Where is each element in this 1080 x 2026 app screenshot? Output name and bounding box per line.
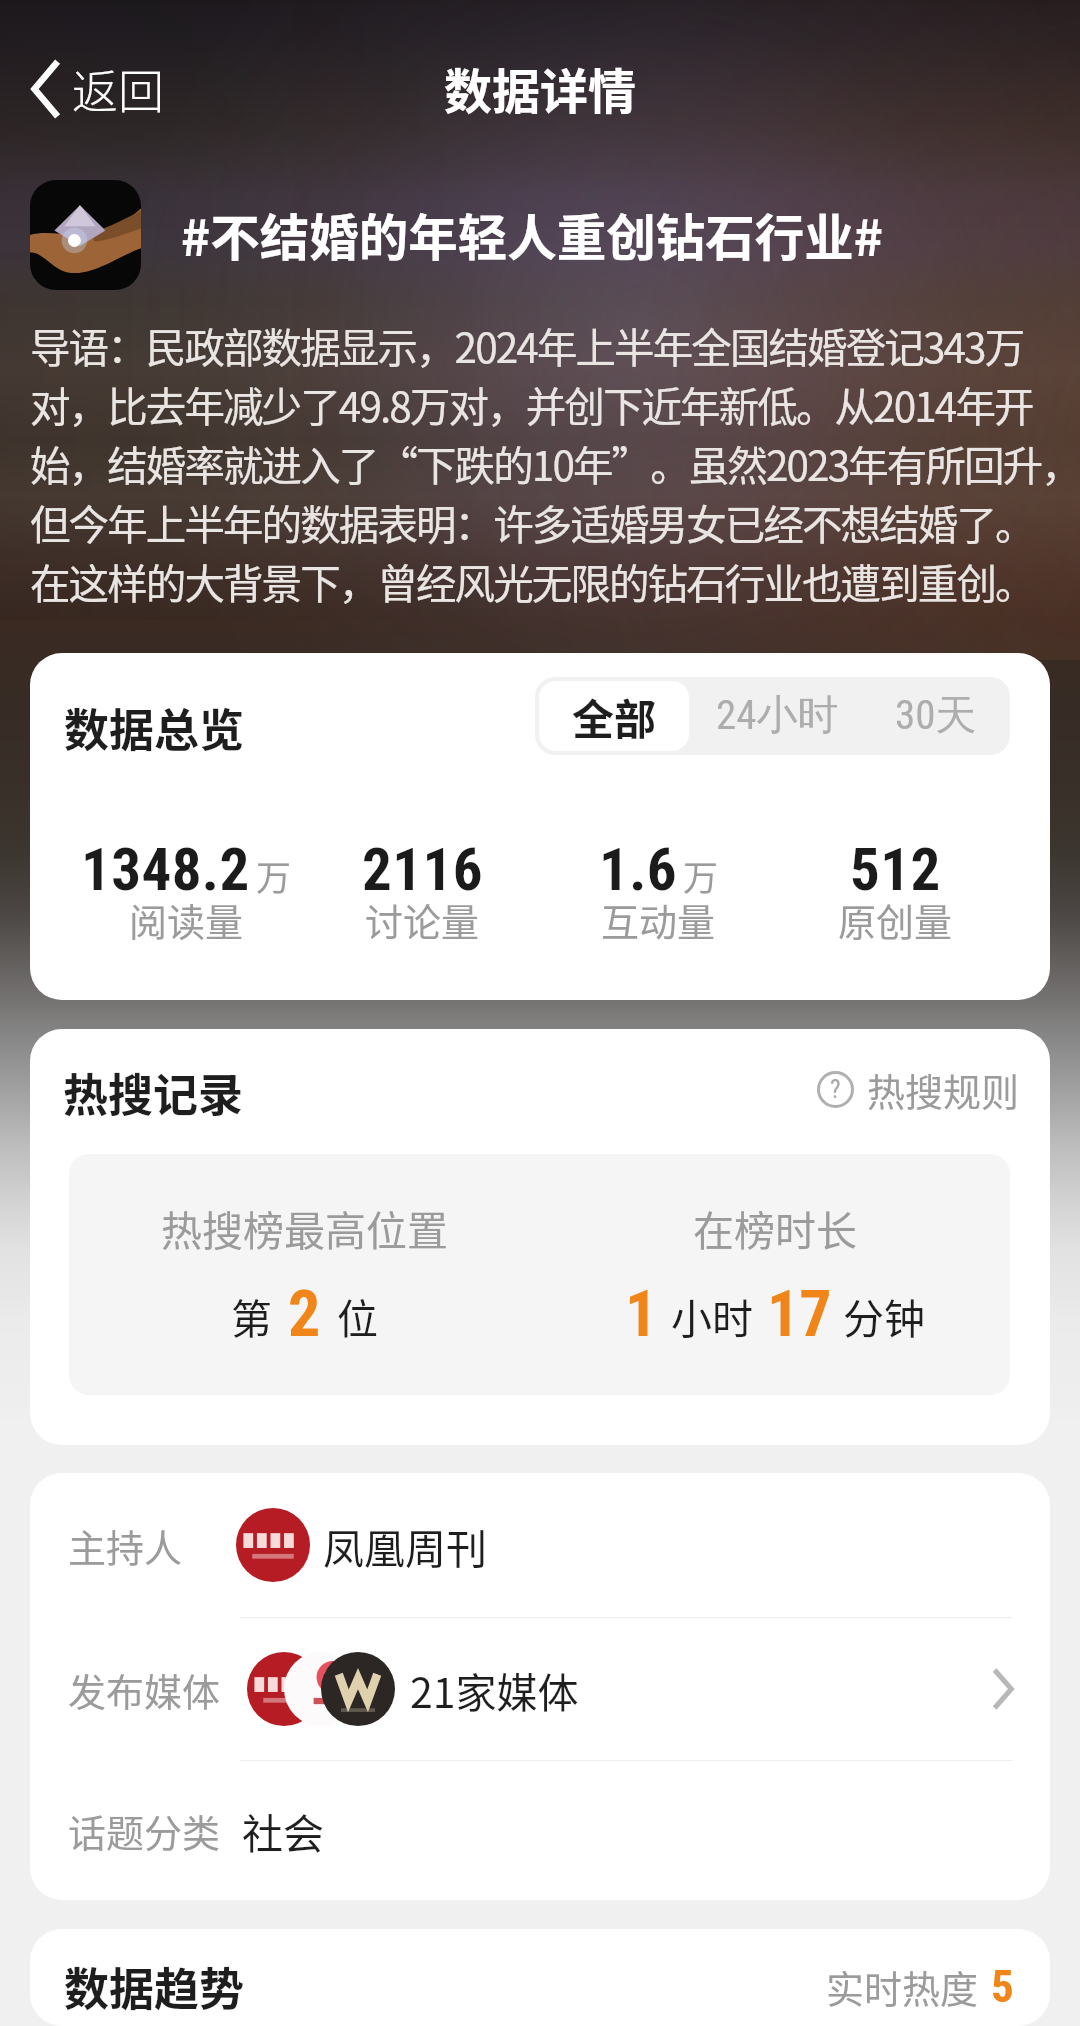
staticText: 实时热度 (826, 1959, 979, 2014)
staticText: #不结婚的年轻人重创钻石行业# (181, 199, 883, 271)
staticText: 导语：民政部数据显示，2024年上半年全国结婚登记343万 对，比去年减少了49… (30, 316, 1070, 611)
staticText: ? (830, 1075, 841, 1104)
staticText: 主持人 (68, 1518, 183, 1573)
staticText: 热搜规则 (867, 1062, 1020, 1117)
staticText: 讨论量 (365, 892, 480, 947)
button[interactable]: ? (817, 1062, 1020, 1117)
staticText: 互动量 (601, 892, 716, 947)
staticText: 阅读量 (129, 892, 244, 947)
staticText: 发布媒体 (68, 1662, 221, 1717)
button[interactable]: 24小时 (693, 677, 861, 755)
staticText: 返回 (72, 55, 164, 122)
staticText: 17 (767, 1277, 832, 1352)
staticText: 在榜时长 (693, 1198, 857, 1257)
staticText: 全部 (572, 686, 657, 747)
button[interactable]: 主持人 (30, 1473, 1050, 1617)
staticText: 热搜榜最高位置 (161, 1198, 448, 1257)
staticText: 数据详情 (444, 53, 637, 123)
button[interactable]: 全部 (539, 681, 689, 751)
staticText: 位 (337, 1286, 378, 1345)
staticText: 数据趋势 (64, 1954, 245, 2019)
staticText: 2 (288, 1277, 321, 1352)
staticText: 凤凰周刊 (323, 1516, 487, 1575)
button[interactable]: 30天 (861, 677, 1010, 755)
button[interactable]: 返回 (22, 45, 172, 132)
staticText: 社会 (242, 1801, 324, 1860)
staticText: 万 (683, 850, 719, 901)
staticText: 小时 (671, 1286, 753, 1345)
staticText: 1 (625, 1277, 658, 1352)
staticText: 1.6 (599, 835, 677, 904)
staticText: 万 (256, 850, 292, 901)
other: More media (992, 1670, 1014, 1708)
staticText: 21家媒体 (410, 1660, 579, 1719)
staticText: 5 (991, 1960, 1014, 2013)
staticText: 分钟 (843, 1286, 925, 1345)
staticText: 数据总览 (64, 695, 245, 760)
staticText: 24小时 (716, 690, 839, 742)
staticText: 1348.2 (81, 835, 250, 904)
staticText: 第 (231, 1286, 272, 1345)
staticText: 原创量 (838, 892, 953, 947)
button[interactable]: 发布媒体 (30, 1618, 1050, 1760)
staticText: 热搜记录 (63, 1060, 244, 1125)
staticText: 30天 (895, 690, 977, 742)
staticText: 话题分类 (68, 1803, 221, 1858)
staticText: 2116 (362, 835, 483, 904)
staticText: 512 (850, 835, 941, 904)
